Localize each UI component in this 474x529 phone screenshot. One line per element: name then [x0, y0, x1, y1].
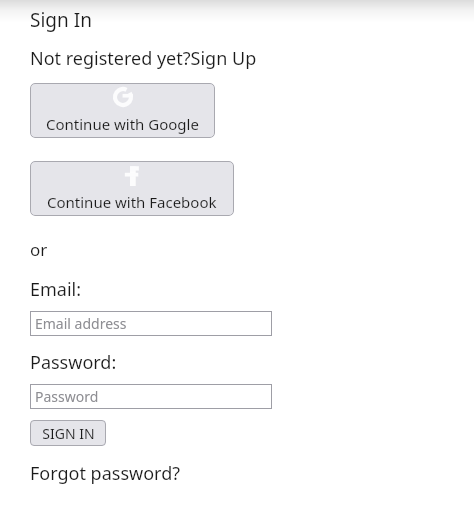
staticText: Not registered yet?Sign Up [30, 46, 257, 71]
button[interactable]: Forgot password? [30, 461, 181, 486]
button[interactable]: Email address [30, 311, 272, 336]
staticText: SIGN IN [42, 424, 95, 443]
button[interactable]: Not registered yet?Sign Up [30, 46, 257, 71]
button[interactable]: Continue with Facebook [30, 161, 234, 216]
staticText: Password: [30, 350, 117, 375]
button[interactable]: Continue with Google [30, 83, 215, 138]
staticText: Continue with Facebook [47, 192, 217, 212]
staticText: Continue with Google [46, 114, 199, 134]
staticText: or [30, 238, 48, 261]
staticText: Email address [35, 314, 127, 333]
staticText: Password [35, 387, 99, 406]
staticText: Sign In [30, 7, 92, 33]
staticText: Email: [30, 277, 82, 302]
button[interactable]: SIGN IN [30, 420, 106, 446]
staticText: Forgot password? [30, 461, 181, 486]
button[interactable]: Password [30, 384, 272, 409]
